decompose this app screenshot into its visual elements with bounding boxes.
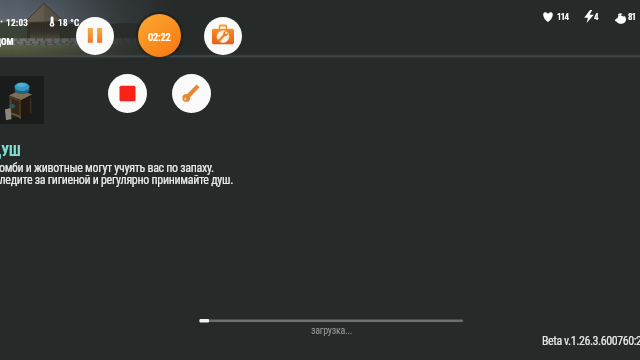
staticText: 81 — [628, 12, 636, 23]
staticText: 114 — [557, 12, 569, 23]
button[interactable]: Stop recording — [108, 74, 147, 113]
staticText: ДОМ — [0, 36, 14, 47]
staticText: Следите за гигиеной и регулярно принимай… — [0, 173, 233, 187]
button[interactable]: Tools — [204, 17, 242, 55]
button[interactable]: Pause recording — [76, 17, 114, 55]
staticText: 18 °C — [58, 17, 80, 28]
staticText: 4 — [594, 12, 598, 23]
staticText: ДУШ — [0, 143, 21, 159]
staticText: Зомби и животные могут учуять вас по зап… — [0, 161, 214, 175]
staticText: Beta v.1.26.3.600760:2 — [542, 334, 640, 348]
button[interactable]: Draw — [172, 74, 211, 113]
staticText: 12:03 — [6, 17, 29, 28]
staticText: загрузка... — [311, 325, 353, 337]
button[interactable]: Recording time 02:22 — [138, 14, 181, 57]
staticText: 02:22 — [148, 31, 171, 43]
